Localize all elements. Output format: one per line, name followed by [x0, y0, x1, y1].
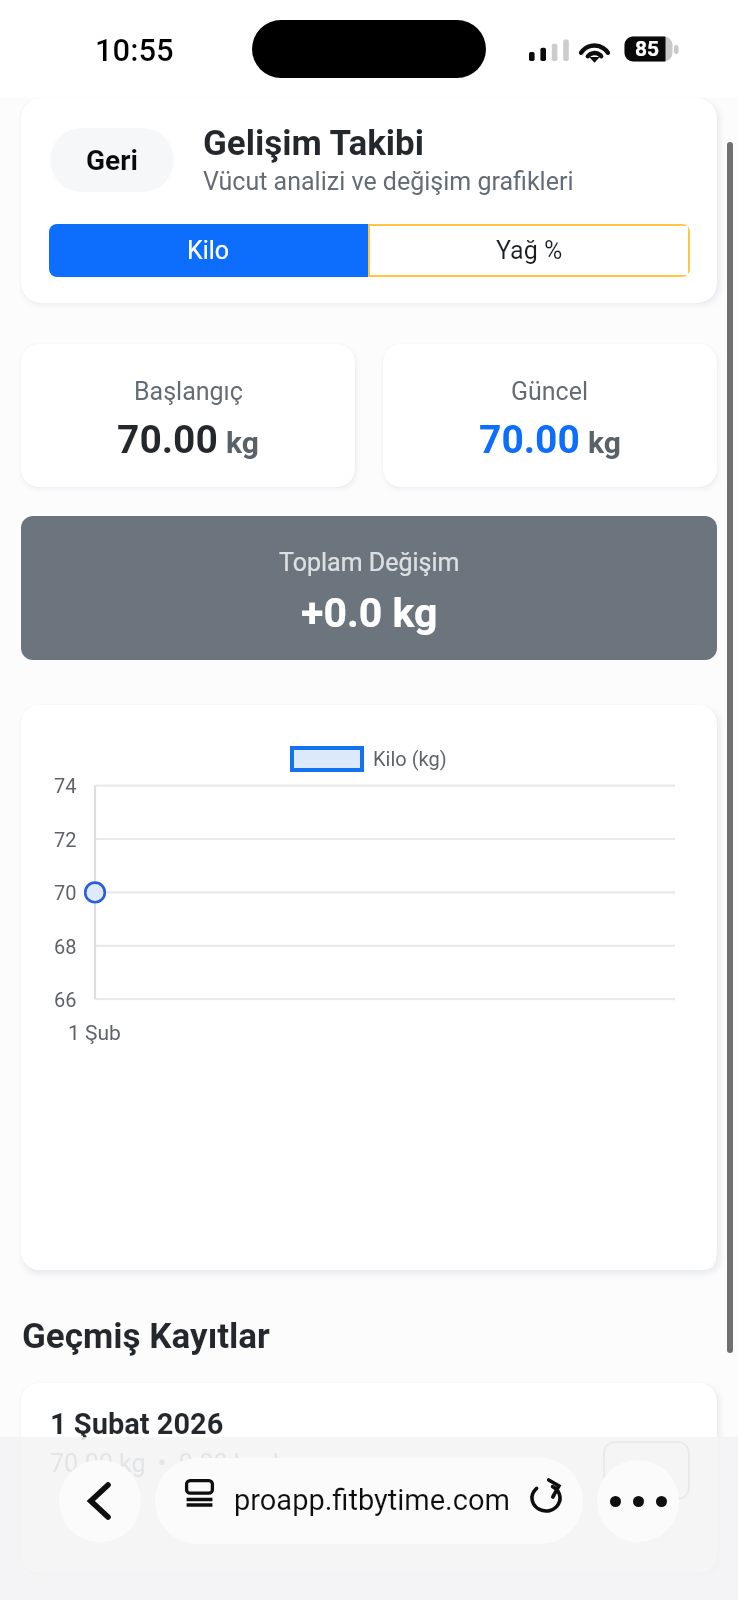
staticText: 10:55: [95, 32, 174, 68]
staticText: Geçmiş Kayıtlar: [22, 1316, 270, 1357]
staticText: kg: [226, 425, 259, 460]
staticText: Vücut analizi ve değişim grafikleri: [203, 167, 574, 196]
staticText: 1 Şubat 2026: [50, 1407, 224, 1441]
button[interactable]: Geri: [50, 128, 174, 192]
staticText: Yağ %: [496, 236, 563, 265]
button[interactable]: 1 Şubat 2026: [21, 1383, 717, 1573]
staticText: Geri: [86, 144, 138, 177]
button[interactable]: Reload: [529, 1478, 563, 1514]
staticText: 70.00: [117, 417, 218, 463]
button[interactable]: Sil: [603, 1441, 690, 1500]
staticText: 74: [54, 774, 77, 797]
staticText: Kilo (kg): [373, 747, 447, 770]
button[interactable]: Güncel: [383, 344, 717, 487]
staticText: 70: [54, 881, 77, 904]
staticText: Güncel: [511, 377, 589, 406]
button[interactable]: Back: [59, 1460, 141, 1542]
staticText: +0.0 kg: [301, 589, 438, 637]
button[interactable]: More: [597, 1460, 679, 1542]
staticText: 70.00: [479, 417, 580, 463]
staticText: 66: [54, 988, 77, 1011]
staticText: 72: [54, 828, 77, 851]
staticText: Toplam Değişim: [279, 548, 460, 577]
staticText: 70.00 kg • 0.00 kcal: [50, 1449, 279, 1478]
button[interactable]: Kilo: [49, 224, 368, 277]
staticText: kg: [588, 425, 621, 460]
staticText: 68: [54, 935, 77, 958]
staticText: 1 Şub: [68, 1021, 121, 1046]
staticText: Gelişim Takibi: [203, 123, 425, 164]
staticText: 85: [635, 37, 660, 62]
staticText: Başlangıç: [134, 377, 243, 406]
button[interactable]: proapp.fitbytime.com: [155, 1458, 583, 1544]
button[interactable]: Yağ %: [368, 224, 690, 277]
button[interactable]: Başlangıç: [21, 344, 355, 487]
staticText: Kilo: [187, 236, 230, 265]
staticText: proapp.fitbytime.com: [234, 1483, 510, 1517]
